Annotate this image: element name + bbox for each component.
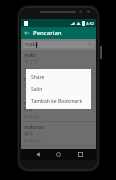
button[interactable]: Tambah ke Bookmark [26,95,91,107]
button[interactable]: makan [21,98,96,121]
button[interactable]: Recents [75,149,86,160]
staticText: Tambah ke Bookmark [31,98,83,105]
staticText: Sonoge [24,66,39,71]
staticText: Inshoku [24,114,40,119]
staticText: そこで [24,59,38,65]
button[interactable]: Back [21,27,33,39]
staticText: Salin [31,86,43,93]
staticText: 食品 [24,131,33,137]
button[interactable]: makan [21,74,96,97]
staticText: maka [24,52,36,58]
button[interactable]: Salin [26,83,91,95]
staticText: 飲食 [24,107,33,113]
button[interactable]: Home [53,149,64,160]
button[interactable]: makanan [21,122,96,145]
staticText: 食べる [24,83,38,89]
staticText: makanan [24,124,45,130]
staticText: makan [24,76,39,82]
staticText: Share [31,74,45,81]
staticText: 4:52 [86,21,94,26]
staticText: Shokuhin [24,138,42,143]
button[interactable]: Back [32,149,43,160]
button[interactable]: maka [21,50,96,73]
button[interactable]: Share [26,71,91,83]
staticText: makan [24,100,39,106]
staticText: Pencarian [33,29,62,37]
staticText: Taberu [24,90,37,95]
button[interactable]: maka [23,41,94,48]
staticText: maka [25,41,38,48]
button[interactable]: Search [86,41,94,48]
